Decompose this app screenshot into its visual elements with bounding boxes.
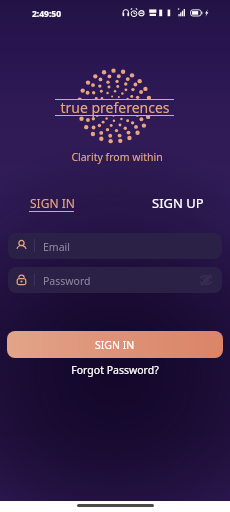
staticText: Email (43, 240, 70, 254)
staticText: 2:49:50 (32, 8, 62, 20)
button[interactable]: SIGN IN (7, 331, 223, 358)
staticText: Clarity from within (2, 150, 230, 164)
button[interactable]: Password (8, 267, 222, 293)
button[interactable]: SIGN IN (28, 193, 76, 215)
staticText: true preferences (0, 98, 230, 117)
button[interactable]: Show password (199, 273, 213, 287)
button[interactable]: Forgot Password? (0, 363, 230, 377)
staticText: Password (43, 274, 91, 288)
button[interactable]: SIGN UP (152, 194, 204, 212)
button[interactable]: Email (8, 233, 222, 259)
staticText: SIGN IN (30, 195, 75, 211)
staticText: SIGN IN (95, 338, 135, 352)
